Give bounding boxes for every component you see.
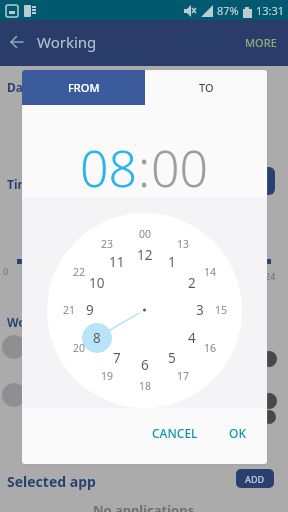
staticText: 24: [265, 270, 276, 282]
button[interactable]: ADD: [236, 469, 274, 488]
staticText: 16: [204, 341, 217, 355]
staticText: 08: [80, 134, 138, 190]
staticText: 15: [215, 303, 228, 317]
staticText: 10: [89, 274, 105, 292]
staticText: 18: [139, 379, 152, 393]
staticText: ADD: [245, 473, 265, 485]
staticText: 22: [73, 265, 86, 279]
staticText: 13: [177, 237, 190, 251]
button[interactable]: OK: [212, 418, 262, 448]
staticText: Time: [7, 176, 37, 192]
staticText: 1: [168, 253, 176, 271]
staticText: 8: [93, 329, 101, 347]
staticText: FROM: [68, 80, 100, 95]
staticText: Days: [7, 79, 36, 95]
staticText: 87%: [217, 3, 239, 18]
staticText: 23: [101, 237, 114, 251]
button[interactable]: TO: [145, 70, 267, 105]
staticText: 17: [177, 369, 190, 383]
staticText: 5: [168, 349, 176, 367]
staticText: 20: [73, 341, 86, 355]
staticText: 9: [86, 301, 94, 319]
button[interactable]: MORE: [221, 22, 288, 62]
staticText: 21: [63, 303, 76, 317]
staticText: 11: [109, 253, 125, 271]
staticText: TO: [199, 80, 214, 95]
staticText: 3: [196, 301, 204, 319]
staticText: :: [138, 134, 151, 190]
staticText: 13:31: [256, 3, 285, 18]
staticText: 12: [137, 246, 153, 264]
staticText: Selected app: [7, 472, 96, 491]
staticText: 7: [113, 349, 121, 367]
staticText: MORE: [245, 35, 277, 50]
button[interactable]: [240, 167, 275, 195]
staticText: OK: [229, 425, 246, 441]
staticText: No applications: [93, 501, 195, 512]
button[interactable]: FROM: [22, 70, 145, 105]
staticText: Working apps: [7, 314, 90, 330]
staticText: 0: [3, 265, 9, 277]
button[interactable]: [0, 20, 46, 66]
staticText: 00: [139, 227, 152, 241]
staticText: 6: [141, 356, 149, 374]
button[interactable]: CANCEL: [140, 418, 210, 448]
staticText: 4: [188, 329, 196, 347]
staticText: CANCEL: [152, 425, 198, 441]
staticText: 19: [101, 369, 114, 383]
staticText: 00: [151, 134, 209, 190]
staticText: 14: [204, 265, 217, 279]
staticText: 2: [188, 274, 196, 292]
staticText: Working: [37, 32, 97, 52]
